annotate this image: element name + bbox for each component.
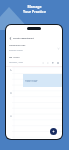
- staticText: 10: [10, 91, 12, 93]
- button[interactable]: Calendar view: [51, 61, 55, 65]
- staticText: Create Appointment: [13, 37, 34, 40]
- staticText: Manage: [27, 4, 42, 9]
- staticText: Wednesday, 1 Event: [9, 61, 24, 63]
- button[interactable]: Next day: [46, 61, 50, 65]
- staticText: AM: [10, 70, 12, 72]
- staticText: 11: [10, 114, 12, 116]
- button[interactable]: Feb 14 2025: [9, 56, 20, 59]
- button[interactable]: Back: [8, 36, 13, 41]
- staticText: AM: [10, 93, 12, 95]
- staticText: Individual Therapy: [25, 79, 38, 81]
- staticText: AM: [10, 116, 12, 118]
- staticText: Appointment Type: [9, 44, 26, 47]
- button[interactable]: Add appointment: [50, 128, 57, 135]
- staticText: 9: [10, 68, 11, 70]
- staticText: 11:00am - 12:00pm: [25, 81, 38, 83]
- button[interactable]: Individual Therapy: [23, 74, 62, 87]
- button[interactable]: Appointment Type: [6, 42, 62, 53]
- staticText: Individual Therapy: [9, 49, 23, 51]
- button[interactable]: Previous day: [41, 61, 45, 65]
- button[interactable]: More options: [56, 61, 60, 65]
- staticText: Your Practice: [23, 9, 46, 14]
